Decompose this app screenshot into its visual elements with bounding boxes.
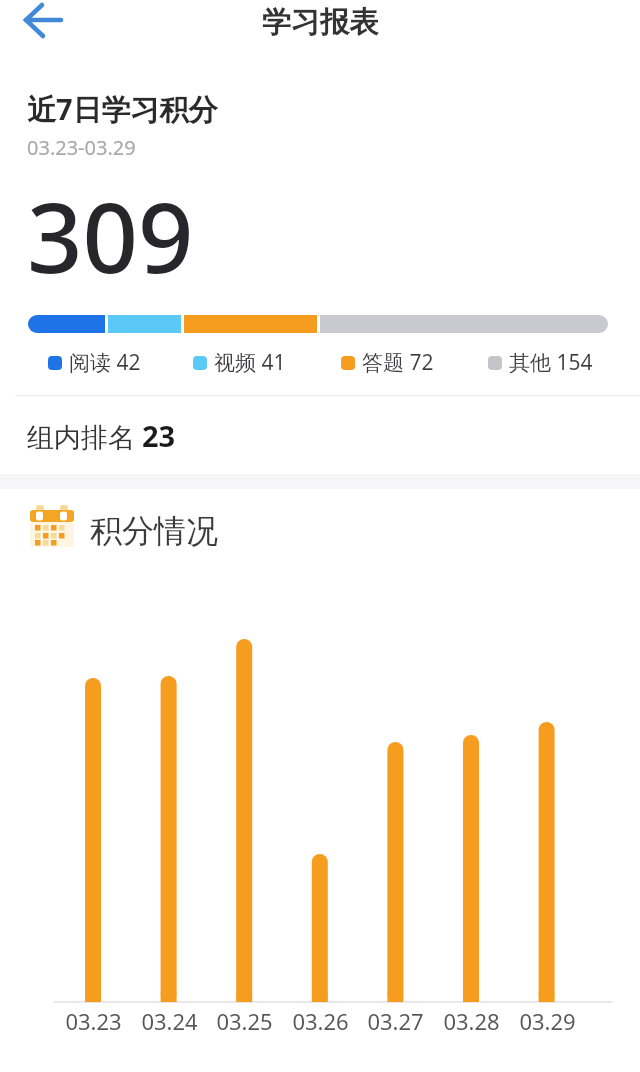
staticText: 03.23-03.29 (27, 134, 136, 161)
button[interactable]: 组内排名 23 (27, 416, 176, 455)
staticText: 03.29 (519, 1006, 576, 1036)
button[interactable] (0, 0, 70, 44)
button[interactable]: 阅读 42 (48, 348, 141, 377)
staticText: 03.24 (141, 1006, 198, 1036)
staticText: 答题 72 (362, 348, 434, 377)
staticText: 近7日学习积分 (27, 89, 218, 129)
staticText: 视频 41 (214, 348, 286, 377)
staticText: 积分情况 (90, 511, 218, 551)
staticText: 阅读 42 (69, 348, 141, 377)
staticText: 其他 154 (509, 348, 593, 377)
button[interactable]: 其他 154 (488, 348, 593, 377)
staticText: 03.25 (216, 1006, 273, 1036)
button[interactable]: 答题 72 (341, 348, 434, 377)
staticText: 03.27 (367, 1006, 424, 1036)
staticText: 03.23 (65, 1006, 122, 1036)
staticText: 03.28 (443, 1006, 500, 1036)
button[interactable]: 视频 41 (193, 348, 286, 377)
staticText: 学习报表 (262, 4, 378, 41)
staticText: 309 (27, 169, 194, 301)
staticText: 03.26 (292, 1006, 349, 1036)
